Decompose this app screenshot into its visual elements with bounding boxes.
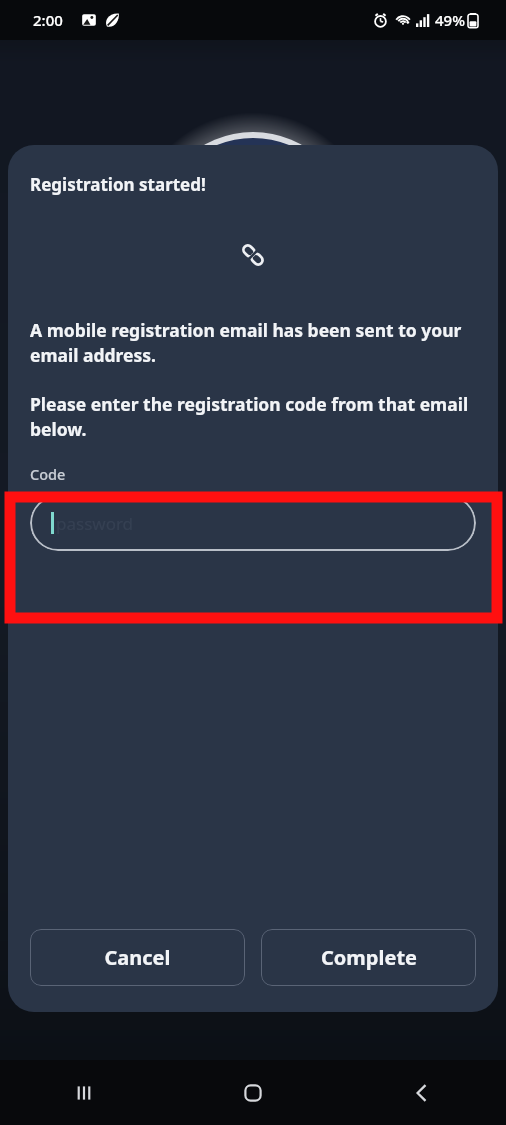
staticText: Please enter the registration code from … <box>30 392 482 442</box>
staticText: Complete <box>321 944 417 971</box>
button[interactable]: Home <box>168 1060 337 1125</box>
staticText: 2:00 <box>33 10 63 30</box>
button[interactable]: Cancel <box>30 929 245 986</box>
staticText: Code <box>30 464 66 484</box>
staticText: A mobile registration email has been sen… <box>30 318 482 368</box>
button[interactable]: Recents <box>0 1060 168 1125</box>
staticText: Cancel <box>104 944 171 971</box>
other: Link <box>238 240 268 270</box>
staticText: 49% <box>435 10 465 30</box>
button[interactable]: password <box>30 495 476 551</box>
staticText: Registration started! <box>30 173 206 196</box>
button[interactable]: Back <box>337 1060 506 1125</box>
button[interactable]: Complete <box>261 929 476 986</box>
staticText: password <box>56 512 134 535</box>
staticText: Register App <box>60 307 220 342</box>
staticText: NATIONAL ARCHIVES ‧ MOBILE APP CENTER <box>95 264 298 276</box>
